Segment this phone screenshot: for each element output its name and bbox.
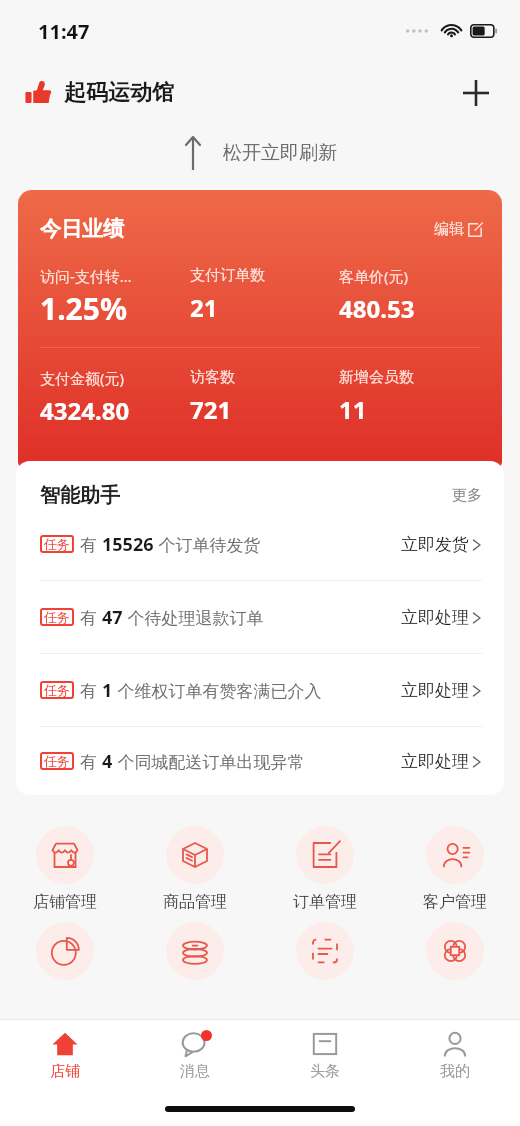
staticText: 新增会员数 bbox=[339, 368, 414, 387]
button[interactable]: 客户管理 bbox=[390, 826, 520, 912]
button[interactable]: 店铺管理 bbox=[0, 826, 130, 912]
button[interactable]: Finance bbox=[130, 922, 260, 980]
staticText: 我的 bbox=[440, 1062, 470, 1081]
staticText: 立即处理 bbox=[401, 680, 469, 701]
staticText: 1 bbox=[102, 678, 113, 703]
staticText: 头条 bbox=[310, 1062, 340, 1081]
staticText: 消息 bbox=[180, 1062, 210, 1081]
button[interactable]: Data analysis bbox=[0, 922, 130, 980]
staticText: 立即处理 bbox=[401, 751, 469, 772]
staticText: 更多 bbox=[452, 486, 482, 505]
staticText: 店铺管理 bbox=[33, 892, 97, 912]
staticText: 访客数 bbox=[190, 368, 235, 387]
staticText: 起码运动馆 bbox=[64, 79, 174, 107]
staticText: 个同城配送订单出现异常 bbox=[113, 750, 305, 773]
button[interactable]: 消息 bbox=[130, 1020, 260, 1092]
staticText: 编辑 bbox=[434, 220, 464, 239]
staticText: 任务 bbox=[44, 753, 70, 769]
button[interactable]: Add bbox=[454, 71, 498, 115]
button[interactable]: 任务 bbox=[16, 727, 504, 795]
button[interactable]: 编辑 bbox=[434, 220, 482, 239]
button[interactable]: 我的 bbox=[390, 1020, 520, 1092]
staticText: 11 bbox=[339, 393, 367, 426]
staticText: 有 bbox=[80, 679, 102, 702]
staticText: 任务 bbox=[44, 682, 70, 698]
staticText: 松开立即刷新 bbox=[223, 141, 337, 165]
staticText: 1.25% bbox=[40, 288, 127, 329]
staticText: 客单价(元) bbox=[339, 266, 409, 286]
staticText: 个待处理退款订单 bbox=[123, 606, 264, 629]
staticText: 任务 bbox=[44, 536, 70, 552]
button[interactable]: Scan bbox=[260, 922, 390, 980]
button[interactable]: More apps bbox=[390, 922, 520, 980]
staticText: 店铺 bbox=[50, 1062, 80, 1081]
staticText: 客户管理 bbox=[423, 892, 487, 912]
staticText: 480.53 bbox=[339, 292, 415, 325]
staticText: 立即发货 bbox=[401, 534, 469, 555]
staticText: 访问-支付转… bbox=[40, 266, 132, 286]
button[interactable]: 头条 bbox=[260, 1020, 390, 1092]
staticText: 任务 bbox=[44, 609, 70, 625]
button[interactable]: 商品管理 bbox=[130, 826, 260, 912]
staticText: 21 bbox=[190, 291, 218, 324]
button[interactable]: 任务 bbox=[16, 508, 504, 580]
staticText: 4 bbox=[102, 749, 113, 774]
staticText: 订单管理 bbox=[293, 892, 357, 912]
button[interactable]: 任务 bbox=[16, 654, 504, 726]
staticText: 支付订单数 bbox=[190, 266, 265, 285]
button[interactable]: 起码运动馆 bbox=[24, 79, 174, 107]
staticText: 立即处理 bbox=[401, 607, 469, 628]
staticText: 智能助手 bbox=[40, 483, 120, 508]
button[interactable]: 任务 bbox=[16, 581, 504, 653]
staticText: 个维权订单有赞客满已介入 bbox=[113, 679, 322, 702]
staticText: 支付金额(元) bbox=[40, 368, 125, 388]
button[interactable]: 更多 bbox=[452, 486, 482, 505]
staticText: 721 bbox=[190, 393, 232, 426]
button[interactable]: 店铺 bbox=[0, 1020, 130, 1092]
staticText: 11:47 bbox=[38, 18, 90, 45]
button[interactable]: 订单管理 bbox=[260, 826, 390, 912]
staticText: 有 bbox=[80, 750, 102, 773]
staticText: 15526 bbox=[102, 532, 154, 557]
staticText: 有 bbox=[80, 606, 102, 629]
staticText: 47 bbox=[102, 605, 123, 630]
staticText: 有 bbox=[80, 533, 102, 556]
staticText: 商品管理 bbox=[163, 892, 227, 912]
staticText: 个订单待发货 bbox=[154, 533, 261, 556]
button[interactable]: 今日业绩 bbox=[18, 190, 502, 468]
staticText: 今日业绩 bbox=[40, 216, 124, 242]
staticText: 4324.80 bbox=[40, 394, 130, 427]
